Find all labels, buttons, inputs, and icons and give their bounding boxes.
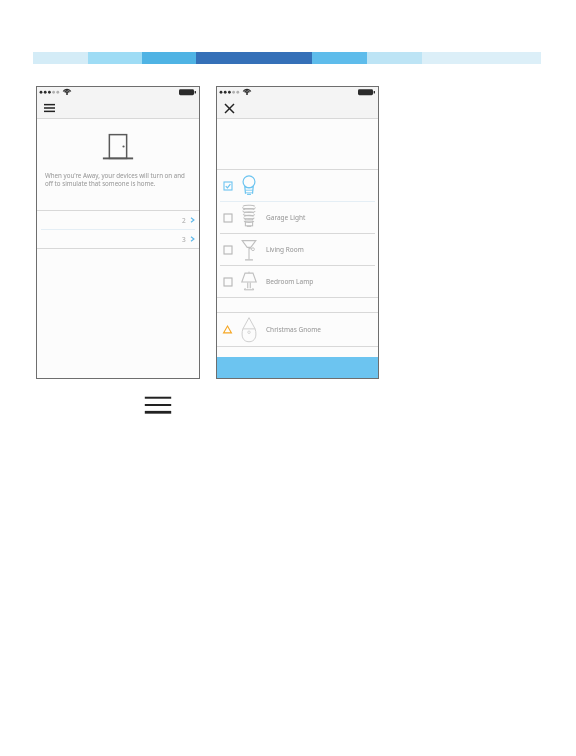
staticText: When you're Away, your devices will turn… (45, 171, 188, 188)
staticText: Bedroom Lamp (266, 277, 314, 286)
button[interactable]: 2 (36, 211, 200, 229)
staticText: Garage Light (266, 213, 306, 222)
button[interactable]: Living Room (216, 234, 379, 265)
button[interactable]: Garage Light (216, 202, 379, 233)
staticText: Living Room (266, 245, 304, 254)
button[interactable]: Christmas Gnome (216, 313, 379, 346)
staticText: 2 (182, 216, 186, 225)
button[interactable]: 3 (36, 230, 200, 248)
button[interactable]: Open navigation menu (42, 101, 56, 115)
button[interactable]: Menu (143, 392, 173, 418)
button[interactable] (216, 170, 379, 201)
button[interactable]: Confirm selection (216, 357, 379, 379)
button[interactable]: Close (222, 101, 236, 115)
staticText: Christmas Gnome (266, 325, 321, 334)
button[interactable]: Bedroom Lamp (216, 266, 379, 297)
staticText: 3 (182, 235, 186, 244)
